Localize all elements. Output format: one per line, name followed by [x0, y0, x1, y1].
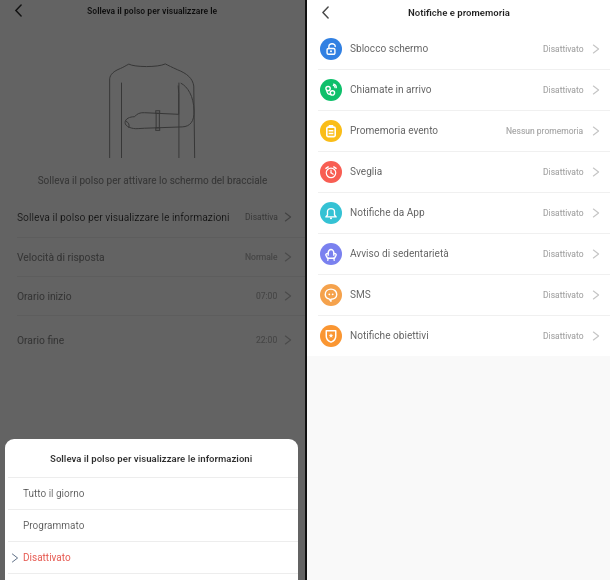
button[interactable]: Disattivato	[5, 542, 298, 573]
button[interactable]: SMS	[307, 275, 610, 315]
button[interactable]: Solleva il polso per visualizzare le inf…	[0, 197, 305, 237]
staticText: SMS	[350, 289, 371, 301]
button[interactable]: Tutto il giorno	[5, 478, 298, 509]
staticText: Velocità di risposta	[17, 251, 105, 263]
staticText: Tutto il giorno	[23, 488, 85, 500]
staticText: Nessun promemoria	[506, 126, 584, 136]
staticText: 22:00	[256, 335, 278, 345]
button[interactable]: Promemoria evento	[307, 111, 610, 151]
button[interactable]: Sveglia	[307, 152, 610, 192]
button[interactable]: Orario inizio	[0, 277, 305, 315]
staticText: Disattivato	[543, 249, 584, 259]
staticText: Disattivato	[23, 552, 71, 564]
button[interactable]: Chiamate in arrivo	[307, 70, 610, 110]
button[interactable]: Avviso di sedentarietà	[307, 234, 610, 274]
button[interactable]: Sblocco schermo	[307, 29, 610, 69]
button[interactable]: Notifiche da App	[307, 193, 610, 233]
staticText: Disattiva	[245, 212, 278, 222]
staticText: Sveglia	[350, 166, 383, 178]
staticText: 07:00	[256, 291, 278, 301]
staticText: Disattivato	[543, 331, 584, 341]
button[interactable]: Back	[314, 1, 337, 24]
staticText: Disattivato	[543, 85, 584, 95]
button[interactable]: Programmato	[5, 510, 298, 541]
staticText: Notifiche da App	[350, 207, 425, 219]
button[interactable]: Back	[7, 0, 30, 22]
staticText: Disattivato	[543, 290, 584, 300]
staticText: Disattivato	[543, 44, 584, 54]
staticText: Solleva il polso per visualizzare le inf…	[50, 453, 253, 464]
button[interactable]: Orario fine	[0, 316, 305, 363]
staticText: Disattivato	[543, 208, 584, 218]
staticText: Normale	[245, 252, 278, 262]
staticText: Notifiche obiettivi	[350, 330, 429, 342]
staticText: Notifiche e promemoria	[408, 7, 510, 18]
staticText: Disattivato	[543, 167, 584, 177]
staticText: Promemoria evento	[350, 125, 439, 137]
staticText: Programmato	[23, 520, 85, 532]
staticText: Solleva il polso per attivare lo schermo…	[0, 175, 305, 187]
staticText: Sblocco schermo	[350, 43, 429, 55]
staticText: Avviso di sedentarietà	[350, 248, 449, 260]
button[interactable]: Notifiche obiettivi	[307, 316, 610, 356]
staticText: Orario fine	[17, 334, 65, 346]
staticText: Chiamate in arrivo	[350, 84, 432, 96]
button[interactable]: Velocità di risposta	[0, 238, 305, 276]
staticText: Solleva il polso per visualizzare le inf…	[17, 211, 230, 223]
staticText: Orario inizio	[17, 290, 72, 302]
staticText: Solleva il polso per visualizzare le	[87, 6, 218, 16]
